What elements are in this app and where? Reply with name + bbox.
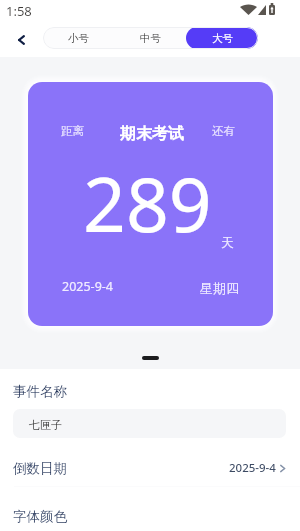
staticText: 小号 [68,32,89,45]
button[interactable]: 小号 [43,27,114,49]
staticText: 天 [221,235,234,251]
button[interactable]: 倒数日期 [0,452,300,484]
button[interactable]: 距离 [28,82,273,326]
staticText: 七匣子 [29,418,62,432]
staticText: 距离 [61,124,84,138]
staticText: 2025-9-4 [62,278,113,295]
staticText: 大号 [212,32,233,45]
staticText: 1:58 [6,2,32,20]
staticText: 星期四 [200,280,239,296]
button[interactable]: 中号 [114,27,186,49]
staticText: 期末考试 [120,124,184,144]
staticText: 事件名称 [13,383,67,400]
button[interactable]: Back [8,27,34,53]
button[interactable]: 字体颜色 [0,501,300,531]
staticText: 289 [83,152,212,254]
staticText: 2025-9-4 [229,460,276,476]
staticText: 还有 [212,124,235,138]
button[interactable]: 七匣子 [13,409,286,438]
staticText: 中号 [140,32,161,45]
button[interactable]: 大号 [186,27,258,49]
staticText: 字体颜色 [13,508,67,525]
staticText: 倒数日期 [13,460,67,477]
